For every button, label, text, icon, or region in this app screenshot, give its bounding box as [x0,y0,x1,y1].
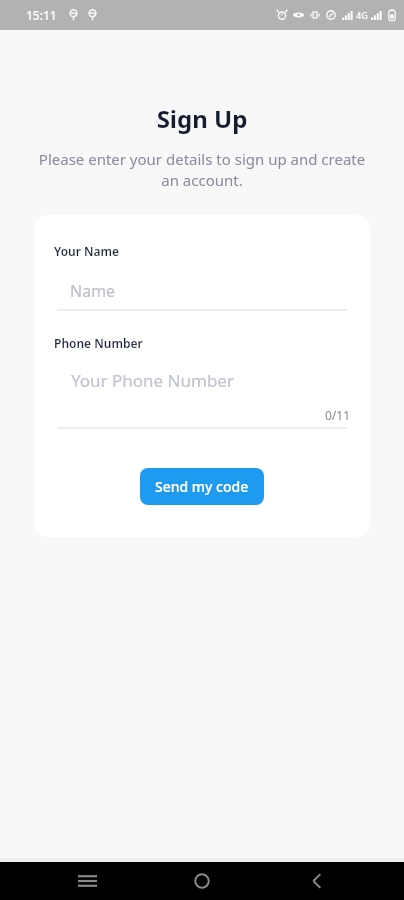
staticText: 0/11 [34,407,350,423]
staticText: Send my code [155,477,249,496]
button[interactable]: Back [289,862,345,900]
staticText: Your Phone Number [71,369,234,392]
staticText: Your Name [54,243,120,259]
staticText: 15:11 [26,7,57,23]
staticText: Phone Number [54,335,143,351]
staticText: Name [70,280,116,302]
button[interactable]: Your Phone Number [57,363,347,397]
staticText: 4G [356,9,368,21]
button[interactable]: Recent apps [59,862,115,900]
staticText: Please enter your details to sign up and… [32,149,372,191]
button[interactable]: Name [57,273,347,309]
staticText: Sign Up [0,102,404,135]
button[interactable]: Send my code [140,468,264,505]
button[interactable]: Home [174,862,230,900]
